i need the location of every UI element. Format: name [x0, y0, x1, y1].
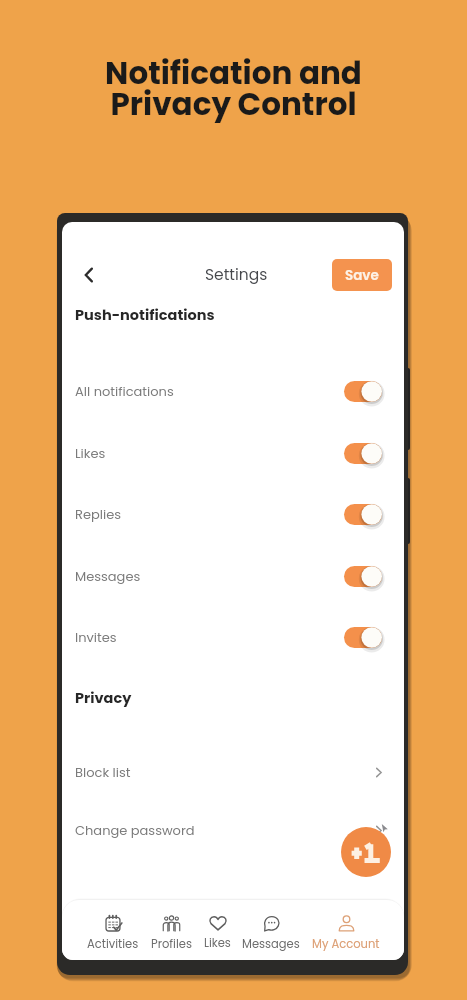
staticText: Push-notifications — [75, 305, 215, 325]
staticText: Notification and Privacy Control — [105, 51, 362, 126]
staticText: Messages — [75, 567, 141, 585]
staticText: Settings — [205, 264, 268, 286]
staticText: Change password — [75, 821, 195, 839]
staticText: Likes — [204, 935, 231, 951]
button[interactable]: Save — [332, 259, 392, 291]
button[interactable]: Change password — [62, 801, 404, 859]
button[interactable]: Replies — [62, 483, 404, 545]
staticText: Invites — [75, 628, 117, 646]
button[interactable]: Likes — [62, 422, 404, 484]
staticText: Block list — [75, 763, 131, 781]
button[interactable]: Messages — [242, 904, 300, 957]
staticText: Activities — [87, 936, 139, 952]
staticText: All notifications — [75, 382, 174, 400]
button[interactable]: Block list — [62, 743, 404, 801]
staticText: Privacy — [75, 688, 132, 708]
button[interactable]: Invites — [62, 606, 404, 668]
button[interactable]: Messages — [62, 545, 404, 607]
button[interactable]: Activities — [87, 904, 139, 957]
button[interactable]: Add — [341, 827, 391, 877]
button[interactable]: Profiles — [151, 904, 192, 957]
staticText: Replies — [75, 505, 121, 523]
staticText: Save — [345, 266, 379, 285]
staticText: Likes — [75, 444, 106, 462]
staticText: My Account — [312, 936, 380, 952]
button[interactable]: Back — [74, 260, 104, 290]
staticText: Profiles — [151, 936, 192, 952]
staticText: Messages — [242, 936, 300, 952]
button[interactable]: My Account — [312, 904, 380, 957]
button[interactable]: All notifications — [62, 360, 404, 422]
button[interactable]: Likes — [204, 904, 231, 956]
